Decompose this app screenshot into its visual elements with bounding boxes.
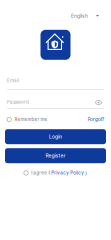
button[interactable]: Login <box>5 129 106 144</box>
staticText: ( Privacy Policy ) <box>47 170 87 176</box>
staticText: English <box>71 13 88 19</box>
staticText: Register <box>45 153 65 159</box>
button[interactable]: ( Privacy Policy ) <box>47 170 87 176</box>
button[interactable]: Forgot? <box>88 117 104 122</box>
staticText: Forgot? <box>88 117 104 122</box>
staticText: I agree <box>31 170 47 176</box>
button[interactable]: English <box>71 11 99 21</box>
button[interactable]: Register <box>5 148 106 163</box>
staticText: Login <box>49 134 62 140</box>
staticText: Email <box>7 78 19 83</box>
staticText: Remember me <box>14 117 47 122</box>
button[interactable]: Remember me <box>7 117 47 122</box>
button[interactable]: Show password <box>95 99 104 105</box>
button[interactable]: I agree <box>24 170 47 176</box>
staticText: Password <box>7 99 29 105</box>
